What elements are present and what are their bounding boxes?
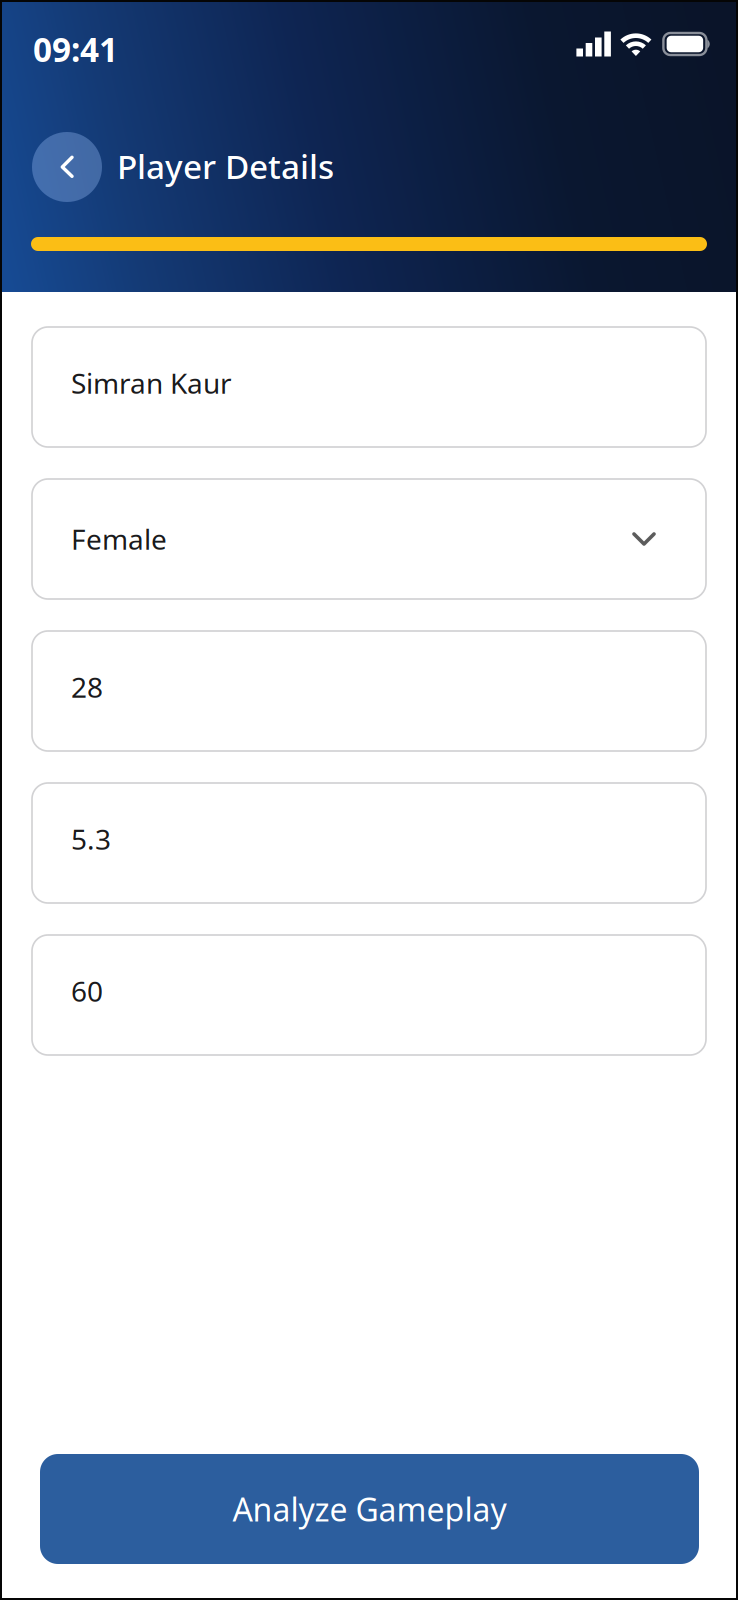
staticText: Female [71,520,167,558]
staticText: Analyze Gameplay [232,1488,506,1530]
button[interactable]: Female [32,479,706,599]
button[interactable]: 60 [32,935,706,1055]
staticText: Simran Kaur [71,364,232,402]
button[interactable]: 5.3 [32,783,706,903]
staticText: 5.3 [71,820,111,858]
button[interactable]: Simran Kaur [32,327,706,447]
button[interactable]: Back [32,132,102,202]
staticText: 28 [71,668,103,706]
button[interactable]: 28 [32,631,706,751]
staticText: Player Details [117,144,334,188]
staticText: 09:41 [33,27,118,71]
staticText: 60 [71,972,103,1010]
button[interactable]: Analyze Gameplay [40,1454,699,1564]
